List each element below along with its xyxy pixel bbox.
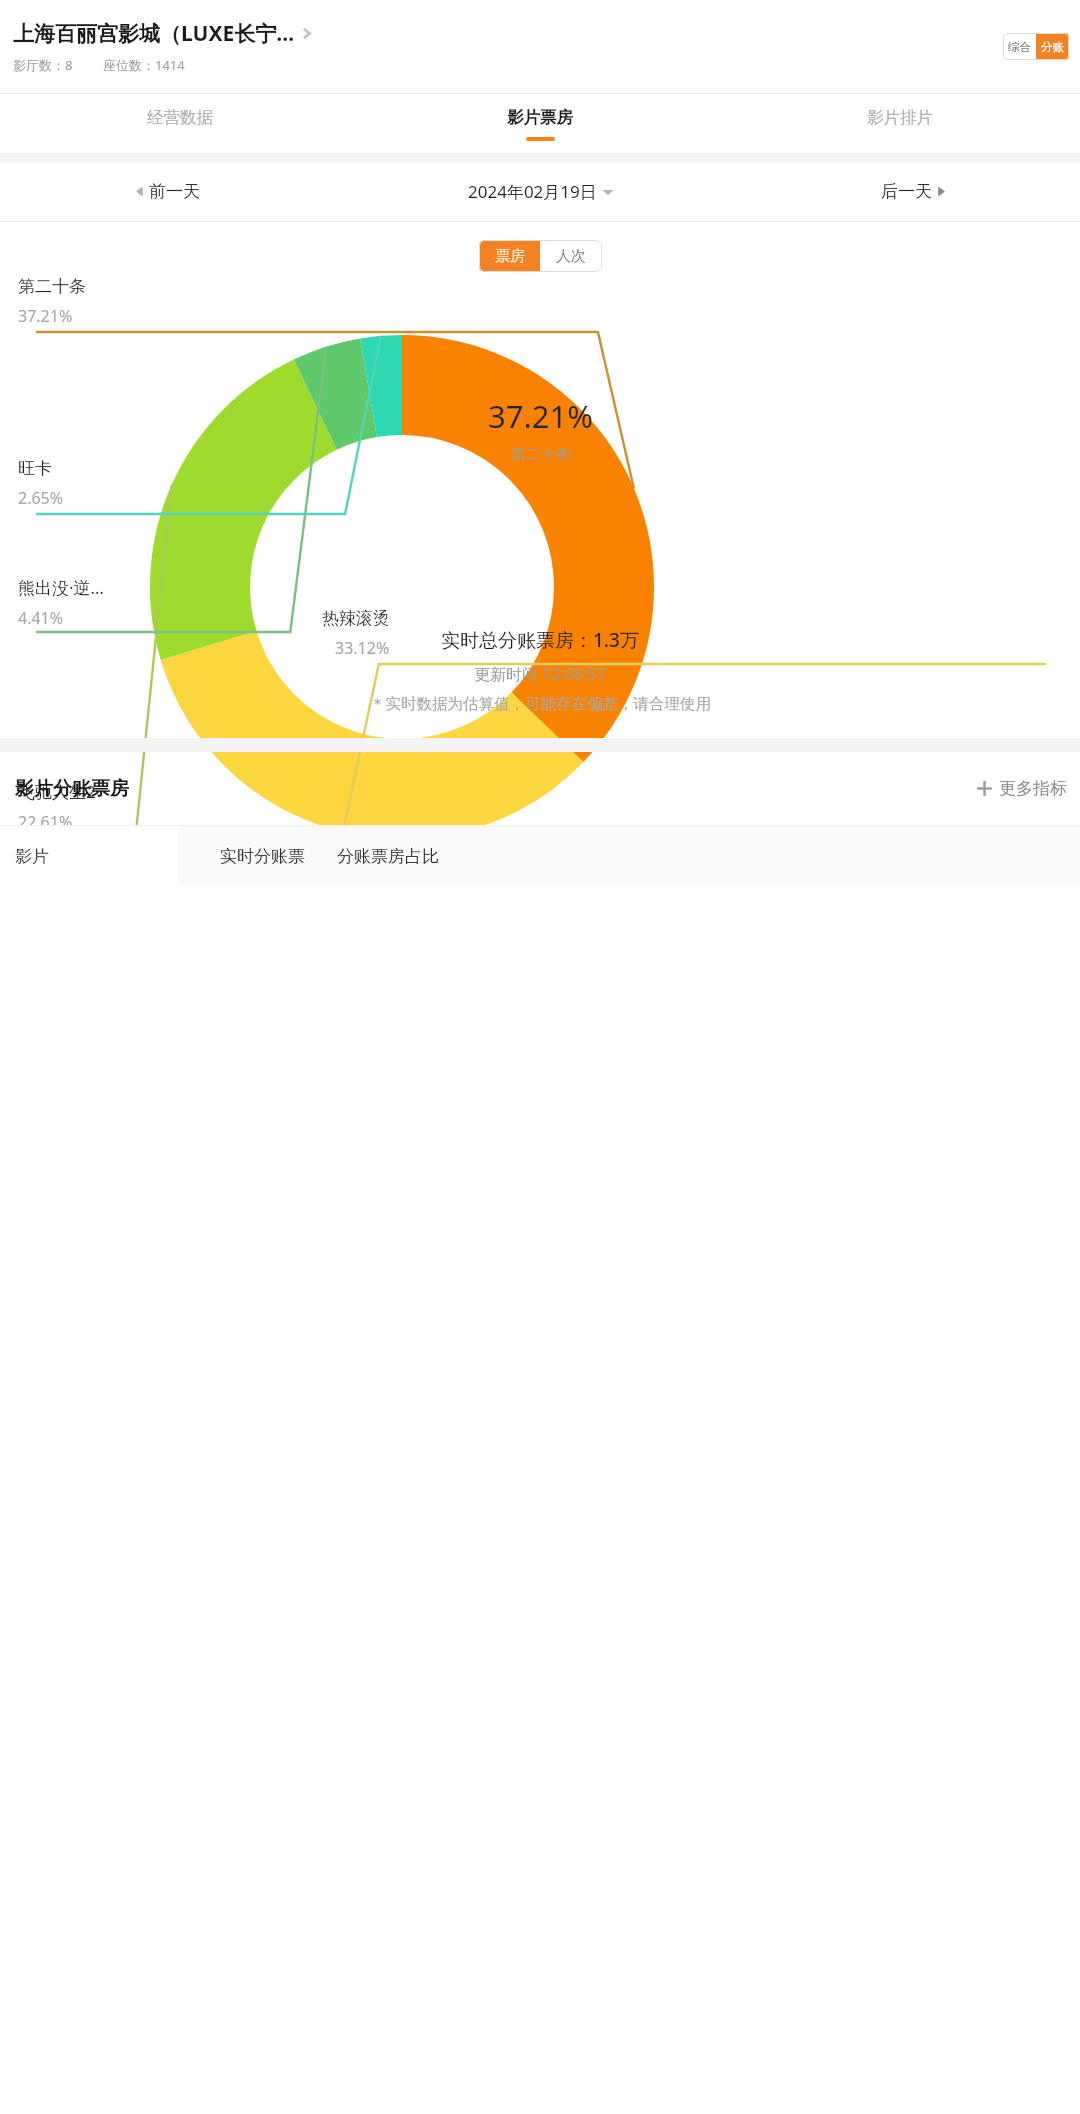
button[interactable]: 经营数据 — [0, 94, 360, 153]
button[interactable]: 影片排片 — [720, 94, 1080, 153]
staticText: 经营数据 — [147, 107, 213, 128]
staticText: 37.21% — [488, 395, 593, 437]
staticText: 影厅数：8 — [13, 56, 73, 74]
button[interactable]: 综合 — [1003, 33, 1036, 60]
staticText: 2024年02月19日 — [468, 180, 597, 203]
staticText: 热辣滚烫 — [322, 608, 390, 629]
staticText: 人次 — [556, 247, 586, 266]
staticText: 座位数：1414 — [103, 56, 185, 74]
staticText: ＊实时数据为估算值，可能存在偏差，请合理使用 — [370, 694, 711, 714]
staticText: 影片 — [15, 846, 49, 867]
button[interactable]: 2024年02月19日 — [333, 162, 748, 221]
staticText: 票房 — [495, 247, 525, 266]
button[interactable]: 人次 — [540, 240, 602, 272]
staticText: 4.41% — [18, 607, 64, 629]
staticText: 影片分账票房 — [15, 777, 129, 801]
button[interactable]: 后一天 — [748, 162, 1080, 221]
staticText: 熊出没·逆… — [18, 576, 105, 599]
staticText: 后一天 — [881, 181, 932, 202]
button[interactable]: 分账 — [1036, 33, 1069, 60]
staticText: 更新时间 12:08:57 — [474, 663, 606, 685]
staticText: 旺卡 — [18, 458, 52, 479]
button[interactable]: 更多指标 — [977, 778, 1067, 799]
staticText: 综合 — [1008, 40, 1031, 54]
staticText: 22.61% — [18, 811, 73, 833]
staticText: 更多指标 — [999, 778, 1067, 799]
staticText: 第二十条 — [18, 276, 86, 297]
staticText: 影片票房 — [507, 107, 573, 128]
button[interactable]: 影片票房 — [360, 94, 720, 153]
staticText: 上海百丽宫影城（LUXE长宁… — [13, 19, 295, 48]
staticText: 影片排片 — [867, 107, 933, 128]
staticText: 飞驰人生2 — [18, 780, 96, 803]
staticText: 实时分账票 — [220, 846, 305, 867]
staticText: 37.21% — [18, 305, 73, 327]
staticText: 第二十条 — [511, 445, 571, 464]
staticText: 前一天 — [149, 181, 200, 202]
button[interactable]: 票房 — [479, 240, 540, 272]
staticText: 分账 — [1041, 40, 1064, 54]
staticText: 实时总分账票房：1.3万 — [441, 627, 639, 653]
staticText: 33.12% — [335, 637, 390, 659]
staticText: 分账票房占比 — [337, 846, 439, 867]
button[interactable]: 前一天 — [0, 162, 333, 221]
staticText: 2.65% — [18, 487, 64, 509]
